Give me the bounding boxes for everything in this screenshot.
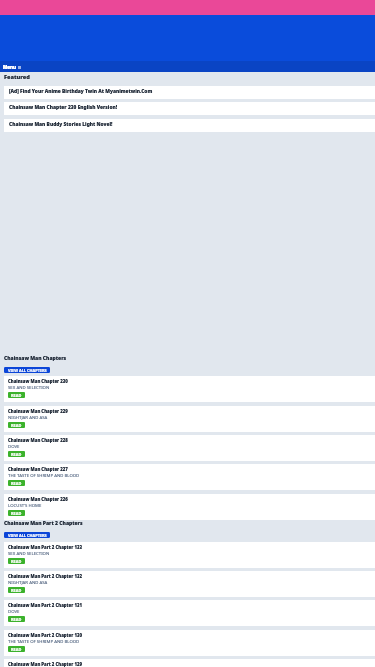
staticText: READ [11, 588, 22, 593]
button[interactable]: Chainsaw Man Chapter 230 [4, 376, 375, 402]
button[interactable]: READ [8, 646, 25, 652]
staticText: Chainsaw Man Chapters [4, 355, 67, 362]
staticText: LOCUST'S HOME [8, 502, 42, 508]
staticText: Chainsaw Man Part 2 Chapter 130 [8, 632, 82, 638]
staticText: Chainsaw Man Part 2 Chapters [4, 520, 83, 527]
staticText: Featured [4, 73, 30, 81]
staticText: Chainsaw Man Part 2 Chapter 133 [8, 544, 82, 550]
staticText: LOCUST'S HOME [8, 502, 42, 508]
staticText: SEX AND SELECTION [8, 550, 50, 556]
staticText: THE TASTE OF SHRIMP AND BLOOD [8, 472, 80, 478]
staticText: THE TASTE OF SHRIMP AND BLOOD [8, 638, 80, 644]
staticText: VIEW ALL CHAPTERS [8, 368, 47, 373]
staticText: Chainsaw Man Part 2 Chapter 129 [8, 661, 82, 667]
staticText: Chainsaw Man Part 2 Chapter 131 [8, 602, 82, 608]
staticText: Chainsaw Man Chapter 229 [8, 408, 68, 414]
staticText: Chainsaw Man Part 2 Chapter 133 [8, 544, 82, 550]
button[interactable]: VIEW ALL CHAPTERS [4, 367, 50, 373]
staticText: READ [11, 481, 22, 486]
button[interactable]: Chainsaw Man Part 2 Chapter 129 [4, 659, 375, 667]
staticText: VIEW ALL CHAPTERS [8, 533, 47, 538]
staticText: Chainsaw Man Part 2 Chapters [4, 520, 83, 527]
button[interactable]: Chainsaw Man Part 2 Chapter 132 [4, 571, 375, 597]
staticText: Menu [3, 64, 17, 70]
button[interactable]: READ [8, 616, 25, 622]
staticText: NIGHTJAR AND ASA [8, 579, 48, 585]
staticText: Chainsaw Man Chapter 227 [8, 466, 68, 472]
staticText: Featured [4, 73, 30, 81]
button[interactable]: Chainsaw Man Part 2 Chapter 130 [4, 630, 375, 656]
staticText: [Ad] Find Your Anime Birthday Twin At My… [9, 88, 153, 95]
staticText: Chainsaw Man Chapter 230 English Version… [9, 104, 118, 111]
staticText: Chainsaw Man Chapter 230 English Version… [9, 104, 118, 111]
staticText: SEX AND SELECTION [8, 384, 50, 390]
staticText: SEX AND SELECTION [8, 384, 50, 390]
button[interactable]: READ [8, 480, 25, 486]
staticText: DOVE [8, 443, 20, 449]
staticText: Chainsaw Man Buddy Stories Light Novel! [9, 121, 113, 128]
staticText: READ [11, 559, 22, 564]
staticText: Chainsaw Man Chapter 229 [8, 408, 68, 414]
staticText: THE TASTE OF SHRIMP AND BLOOD [8, 638, 80, 644]
staticText: Chainsaw Man Buddy Stories Light Novel! [9, 121, 113, 128]
staticText: NIGHTJAR AND ASA [8, 579, 48, 585]
staticText: Chainsaw Man Chapter 228 [8, 437, 68, 443]
staticText: [Ad] Find Your Anime Birthday Twin At My… [9, 88, 153, 95]
staticText: Chainsaw Man Chapter 230 [8, 378, 68, 384]
staticText: READ [11, 647, 22, 652]
staticText: READ [11, 617, 22, 622]
button[interactable]: READ [8, 422, 25, 428]
staticText: READ [11, 511, 22, 516]
button[interactable]: READ [8, 587, 25, 593]
staticText: READ [11, 393, 22, 398]
staticText: Chainsaw Man Chapter 227 [8, 466, 68, 472]
staticText: Chainsaw Man Part 2 Chapter 132 [8, 573, 82, 579]
staticText: Chainsaw Man Chapters [4, 355, 67, 362]
button[interactable]: Chainsaw Man Chapter 228 [4, 435, 375, 461]
button[interactable]: READ [8, 451, 25, 457]
staticText: READ [11, 423, 22, 428]
button[interactable]: Chainsaw Man Part 2 Chapter 131 [4, 600, 375, 626]
staticText: Chainsaw Man Chapter 228 [8, 437, 68, 443]
button[interactable]: Chainsaw Man Chapter 229 [4, 406, 375, 432]
staticText: DOVE [8, 608, 20, 614]
button[interactable]: Chainsaw Man Chapter 227 [4, 464, 375, 490]
staticText: Chainsaw Man Part 2 Chapter 131 [8, 602, 82, 608]
staticText: DOVE [8, 608, 20, 614]
button[interactable]: READ [8, 510, 25, 516]
staticText: SEX AND SELECTION [8, 550, 50, 556]
button[interactable]: Chainsaw Man Chapter 230 English Version… [4, 102, 375, 115]
staticText: Chainsaw Man Part 2 Chapter 129 [8, 661, 82, 667]
staticText: Chainsaw Man Part 2 Chapter 130 [8, 632, 82, 638]
staticText: THE TASTE OF SHRIMP AND BLOOD [8, 472, 80, 478]
button[interactable]: Chainsaw Man Part 2 Chapter 133 [4, 542, 375, 568]
staticText: NIGHTJAR AND ASA [8, 414, 48, 420]
button[interactable]: Menu [0, 61, 375, 72]
staticText: NIGHTJAR AND ASA [8, 414, 48, 420]
staticText: Chainsaw Man Part 2 Chapter 132 [8, 573, 82, 579]
button[interactable]: VIEW ALL CHAPTERS [4, 532, 50, 538]
button[interactable]: READ [8, 392, 25, 398]
staticText: READ [11, 452, 22, 457]
staticText: Chainsaw Man Chapter 230 [8, 378, 68, 384]
button[interactable]: READ [8, 558, 25, 564]
button[interactable]: [Ad] Find Your Anime Birthday Twin At My… [4, 86, 375, 99]
staticText: Chainsaw Man Chapter 226 [8, 496, 68, 502]
staticText: DOVE [8, 443, 20, 449]
staticText: Chainsaw Man Chapter 226 [8, 496, 68, 502]
button[interactable]: Chainsaw Man Buddy Stories Light Novel! [4, 119, 375, 132]
staticText: Menu [3, 64, 17, 70]
button[interactable]: Chainsaw Man Chapter 226 [4, 494, 375, 520]
